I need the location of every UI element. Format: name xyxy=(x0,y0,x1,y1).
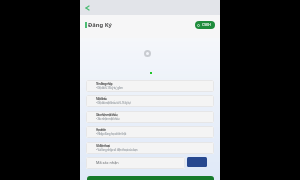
staticText: • Độ dài mật khẩu từ 6-16 ký tự xyxy=(96,101,131,105)
button[interactable]: CSKH xyxy=(195,21,215,29)
staticText: • Nhập đúng họ và tên thật xyxy=(96,132,127,136)
button[interactable]: Tên đăng nhập xyxy=(86,80,214,92)
staticText: Tên đăng nhập xyxy=(96,82,113,86)
staticText: • Độ dài 6-15 ký tự, gồm xyxy=(96,86,123,90)
staticText: Họ và tên xyxy=(96,128,106,132)
button[interactable]: Họ và tên xyxy=(86,126,214,138)
staticText: Đăng Ký xyxy=(88,21,112,29)
button[interactable]: Mã xác nhận xyxy=(86,157,185,169)
button[interactable]: Refresh captcha xyxy=(187,157,207,167)
staticText: Mã xác nhận xyxy=(96,160,119,165)
button[interactable]: Số điện thoại xyxy=(86,142,214,154)
staticText: • Vui lòng nhập số điện thoại của bạn xyxy=(96,148,138,152)
staticText: • Xác nhận mật khẩu xyxy=(96,117,120,121)
button[interactable]: Xác nhận mật khẩu xyxy=(86,111,214,123)
button[interactable]: Back xyxy=(82,1,95,14)
button[interactable]: Mật khẩu xyxy=(86,95,214,107)
staticText: Xác nhận mật khẩu xyxy=(96,113,118,117)
staticText: CSKH xyxy=(202,22,211,27)
staticText: Mật khẩu xyxy=(96,97,107,101)
staticText: Số điện thoại xyxy=(96,144,110,148)
button[interactable]: Đăng ký xyxy=(87,176,214,180)
